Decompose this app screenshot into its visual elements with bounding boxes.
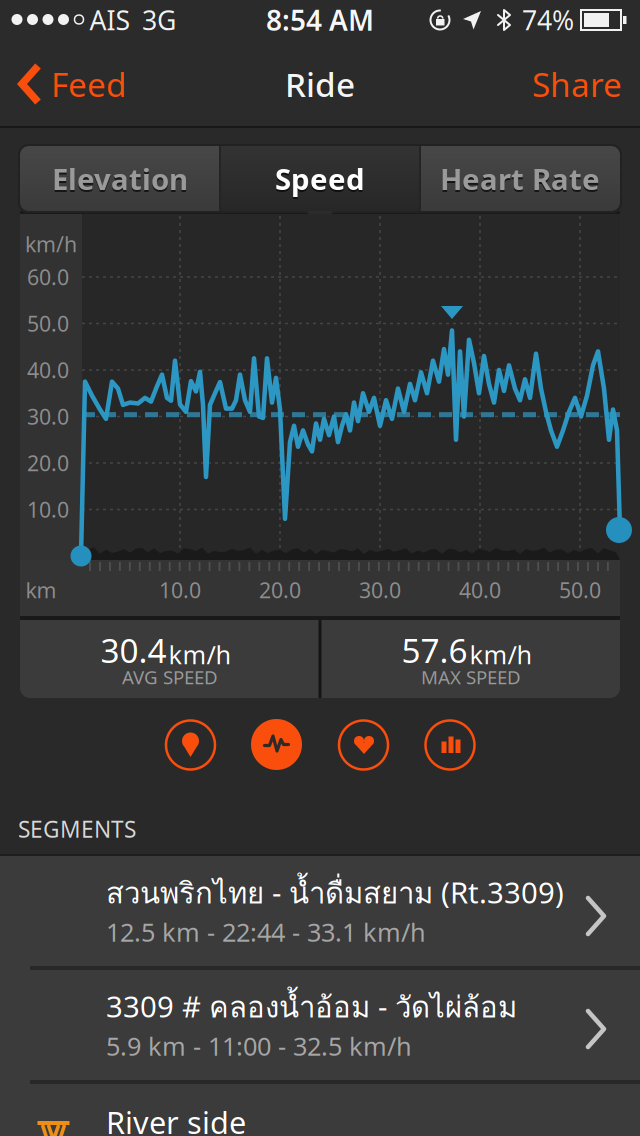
staticText: 60.0	[27, 263, 69, 291]
button[interactable]: Feed	[16, 62, 146, 106]
staticText: 50.0	[559, 576, 601, 604]
staticText: km/h	[469, 637, 532, 671]
button[interactable]: Analysis	[425, 720, 475, 770]
staticText: Ride	[285, 62, 355, 106]
staticText: 50.0	[27, 309, 69, 338]
staticText: 20.0	[259, 576, 301, 604]
button[interactable]: Heart rate	[338, 720, 388, 770]
staticText: 12.5 km - 22:44 - 33.1 km/h	[106, 915, 426, 949]
staticText: AVG SPEED	[122, 665, 218, 689]
staticText: MAX SPEED	[421, 665, 521, 689]
staticText: 40.0	[459, 576, 501, 604]
staticText: 3G	[142, 2, 176, 38]
staticText: 30.0	[359, 576, 401, 604]
staticText: 10.0	[27, 495, 69, 524]
button[interactable]: Speed	[220, 146, 420, 211]
staticText: SEGMENTS	[18, 814, 136, 844]
button[interactable]: สวนพริกไทย - น้ำดื่มสยาม (Rt.3309)	[0, 856, 640, 966]
staticText: 74%	[522, 2, 574, 38]
staticText: 10.0	[159, 576, 201, 604]
staticText: Share	[532, 62, 622, 106]
staticText: km/h	[168, 637, 231, 671]
button[interactable]: Speed	[251, 719, 302, 770]
staticText: 5.9 km - 11:00 - 32.5 km/h	[106, 1029, 412, 1063]
staticText: Feed	[51, 62, 127, 106]
staticText: 20.0	[27, 449, 69, 477]
button[interactable]: Elevation	[20, 146, 220, 211]
staticText: km	[25, 576, 56, 604]
staticText: Elevation	[52, 159, 188, 198]
staticText: 8:54 AM	[266, 1, 374, 39]
staticText: 30.4	[100, 628, 166, 672]
button[interactable]: 3309 # คลองน้ำอ้อม - วัดไผ่ล้อม	[0, 970, 640, 1080]
button[interactable]: Segments	[165, 720, 215, 770]
staticText: Speed	[275, 161, 365, 200]
button[interactable]: Share	[522, 62, 632, 106]
staticText: AIS	[89, 2, 130, 38]
staticText: Speed	[275, 159, 365, 198]
staticText: 3309 # คลองน้ำอ้อม - วัดไผ่ล้อม	[106, 984, 517, 1030]
staticText: สวนพริกไทย - น้ำดื่มสยาม (Rt.3309)	[106, 870, 564, 916]
staticText: Elevation	[52, 161, 188, 200]
button[interactable]: River side	[0, 1084, 640, 1136]
staticText: 30.0	[27, 402, 69, 431]
staticText: 57.6	[401, 628, 467, 672]
staticText: Heart Rate	[440, 161, 600, 200]
staticText: 40.0	[27, 356, 69, 384]
staticText: km/h	[25, 230, 77, 258]
staticText: Heart Rate	[440, 159, 600, 198]
button[interactable]: Heart Rate	[420, 146, 620, 211]
staticText: River side	[106, 1102, 246, 1136]
